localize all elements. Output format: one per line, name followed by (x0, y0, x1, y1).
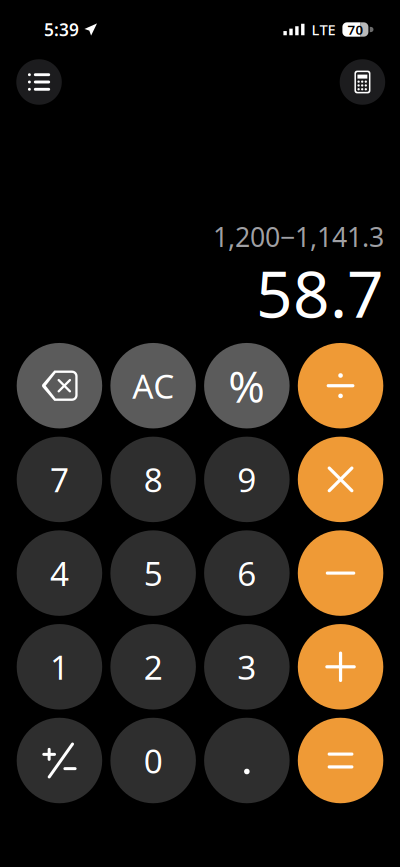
staticText: 70 (347, 21, 363, 38)
staticText: 3 (237, 645, 256, 689)
button[interactable]: 2 (110, 624, 196, 709)
staticText: 0 (144, 738, 163, 783)
button[interactable]: 1 (17, 624, 102, 709)
staticText: 1,200−1,141.3 (213, 219, 384, 254)
button[interactable]: Decimal point (204, 718, 290, 803)
button[interactable]: 3 (204, 624, 290, 709)
staticText: 8 (144, 457, 163, 502)
staticText: 5 (144, 551, 163, 595)
button[interactable]: History (16, 59, 62, 105)
button[interactable]: Equals (298, 718, 383, 803)
button[interactable]: 4 (17, 530, 102, 616)
staticText: 2 (144, 645, 163, 689)
button[interactable]: Calculator (340, 59, 385, 105)
button[interactable]: 9 (204, 437, 290, 522)
staticText: AC (132, 364, 174, 408)
staticText: LTE (311, 20, 335, 39)
button[interactable]: Add (298, 624, 383, 709)
button[interactable]: % (204, 343, 290, 428)
button[interactable]: 7 (17, 437, 102, 522)
staticText: 1 (50, 645, 69, 689)
button[interactable]: Toggle sign (17, 718, 102, 803)
button[interactable]: 0 (110, 718, 196, 803)
button[interactable]: 8 (110, 437, 196, 522)
button[interactable]: Divide (298, 343, 383, 428)
button[interactable]: 5 (110, 530, 196, 616)
button[interactable]: 6 (204, 530, 290, 616)
staticText: 5:39 (44, 18, 79, 41)
button[interactable]: Subtract (298, 530, 383, 616)
staticText: 7 (50, 457, 69, 502)
button[interactable]: Multiply (298, 437, 383, 522)
button[interactable]: Delete (17, 343, 102, 428)
staticText: 9 (237, 457, 256, 502)
button[interactable]: AC (110, 343, 196, 428)
staticText: 4 (50, 551, 69, 595)
staticText: 6 (237, 551, 256, 595)
staticText: 58.7 (256, 250, 384, 335)
staticText: % (228, 356, 265, 415)
